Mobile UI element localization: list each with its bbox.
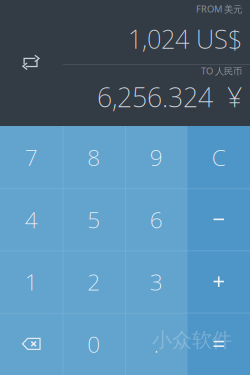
- staticText: .: [154, 329, 159, 359]
- staticText: C: [212, 142, 226, 172]
- staticText: 4: [25, 204, 38, 234]
- button[interactable]: 5: [62, 188, 125, 250]
- staticText: 3: [150, 267, 163, 297]
- staticText: 5: [87, 204, 100, 234]
- staticText: 7: [25, 142, 38, 172]
- button[interactable]: 4: [0, 188, 62, 250]
- staticText: 9: [150, 142, 163, 172]
- staticText: FROM 美元: [196, 3, 242, 15]
- button[interactable]: 1: [0, 250, 62, 313]
- button[interactable]: Equals: [187, 313, 250, 375]
- button[interactable]: Minus: [187, 188, 250, 250]
- button[interactable]: 8: [62, 126, 125, 188]
- button[interactable]: Swap currencies: [3, 39, 59, 87]
- button[interactable]: Delete: [0, 313, 62, 375]
- button[interactable]: 0: [62, 313, 125, 375]
- button[interactable]: 2: [62, 250, 125, 313]
- staticText: TO 人民币: [201, 65, 242, 77]
- button[interactable]: Plus: [187, 250, 250, 313]
- staticText: 2: [87, 267, 100, 297]
- button[interactable]: 6: [125, 188, 187, 250]
- staticText: 8: [87, 142, 100, 172]
- staticText: 1,024 US$: [128, 22, 242, 56]
- staticText: 0: [87, 329, 100, 359]
- button[interactable]: 9: [125, 126, 187, 188]
- button[interactable]: 3: [125, 250, 187, 313]
- staticText: 6: [150, 204, 163, 234]
- button[interactable]: .: [125, 313, 187, 375]
- staticText: 1: [25, 267, 38, 297]
- button[interactable]: 7: [0, 126, 62, 188]
- staticText: 6,256.324 ¥: [97, 79, 242, 115]
- button[interactable]: C: [187, 126, 250, 188]
- staticText: 小众软件: [152, 328, 232, 352]
